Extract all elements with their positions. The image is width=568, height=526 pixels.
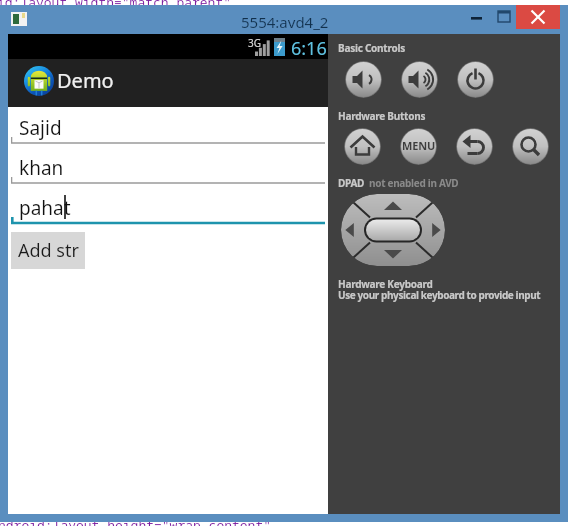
- button[interactable]: D-pad: [341, 194, 445, 266]
- button[interactable]: Close: [516, 5, 560, 29]
- button[interactable]: Add str: [11, 232, 85, 269]
- staticText: not enabled in AVD: [369, 176, 459, 190]
- button[interactable]: Volume down: [345, 61, 382, 98]
- staticText: 5554:avd4_2: [241, 12, 329, 32]
- staticText: MENU: [402, 138, 435, 153]
- button[interactable]: Minimize: [456, 5, 496, 29]
- button[interactable]: Menu: [400, 128, 437, 165]
- button[interactable]: Sajid: [8, 111, 328, 149]
- staticText: DPAD: [338, 176, 365, 190]
- staticText: Demo: [57, 67, 114, 94]
- staticText: 3G: [248, 36, 261, 50]
- button[interactable]: Maximize: [486, 5, 516, 29]
- staticText: khan: [19, 155, 64, 181]
- button[interactable]: Volume up: [401, 61, 438, 98]
- button[interactable]: Search: [512, 128, 549, 165]
- staticText: id:layout_width="match_parent": [0, 0, 232, 11]
- staticText: Use your physical keyboard to provide in…: [338, 288, 568, 302]
- button[interactable]: khan: [8, 151, 328, 189]
- button[interactable]: Power: [457, 61, 494, 98]
- staticText: Add str: [18, 238, 79, 263]
- staticText: 6:16: [291, 36, 327, 61]
- button[interactable]: Back: [456, 128, 493, 165]
- button[interactable]: Home: [344, 128, 381, 165]
- button[interactable]: pahat: [8, 191, 328, 229]
- staticText: Basic Controls: [338, 41, 405, 55]
- staticText: Hardware Buttons: [338, 109, 426, 123]
- staticText: ndroid:layout_height="wrap_content": [0, 516, 272, 526]
- staticText: pahat: [19, 195, 71, 221]
- staticText: Sajid: [19, 115, 62, 141]
- staticText: Hardware Keyboard: [338, 277, 433, 291]
